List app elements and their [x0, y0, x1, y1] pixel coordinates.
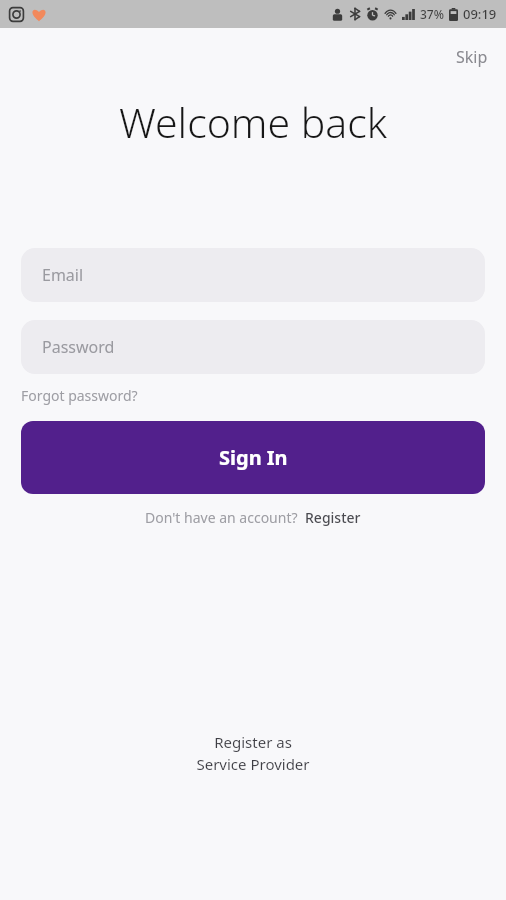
button[interactable]: Skip [448, 42, 496, 72]
staticText: Skip [456, 46, 488, 68]
staticText: Don't have an account? [145, 508, 305, 527]
staticText: Register [305, 508, 361, 527]
staticText: Sign In [219, 444, 288, 471]
button[interactable]: Email [21, 248, 485, 302]
button[interactable]: Register [305, 508, 361, 527]
staticText: Welcome back [0, 94, 506, 150]
button[interactable]: Password [21, 320, 485, 374]
button[interactable]: Forgot password? [21, 386, 138, 405]
staticText: Forgot password? [21, 386, 138, 405]
staticText: 09:19 [463, 5, 497, 23]
button[interactable]: Register as Service Provider [186, 728, 320, 779]
staticText: 37% [420, 6, 444, 22]
staticText: Password [42, 336, 115, 358]
staticText: Email [42, 264, 84, 286]
button[interactable]: Sign In [21, 421, 485, 494]
staticText: Register as Service Provider [196, 732, 310, 775]
